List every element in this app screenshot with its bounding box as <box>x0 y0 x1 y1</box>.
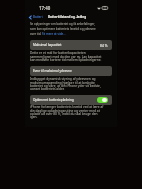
button[interactable]: Optimeret batteriopladning <box>30 95 112 105</box>
staticText: Batteritilstand og -lading <box>48 15 87 19</box>
staticText: Se oplysninger om batteriet og få anbefa… <box>30 22 101 36</box>
staticText: Optimeret batteriopladning <box>33 98 74 102</box>
button[interactable]: Maksimal kapacitet <box>30 40 112 50</box>
staticText: Maksimal kapacitet <box>33 43 62 47</box>
staticText: 84 % <box>100 43 108 47</box>
button[interactable]: Optimeret batteriopladning <box>97 97 108 103</box>
staticText: Dette er et mål for batterikapaciteten s… <box>30 51 104 62</box>
button[interactable]: Evne til maksimal ydeevne <box>30 66 112 76</box>
staticText: Indbygget dynamisk styring af ydeevnen o… <box>30 77 104 91</box>
staticText: 17:40 <box>39 5 51 11</box>
staticText: Batteri <box>33 15 43 19</box>
staticText: Evne til maksimal ydeevne <box>33 69 72 73</box>
button[interactable]: Batteri <box>29 14 43 20</box>
staticText: iPhone forlænger batteriets levetid ved … <box>30 105 104 119</box>
